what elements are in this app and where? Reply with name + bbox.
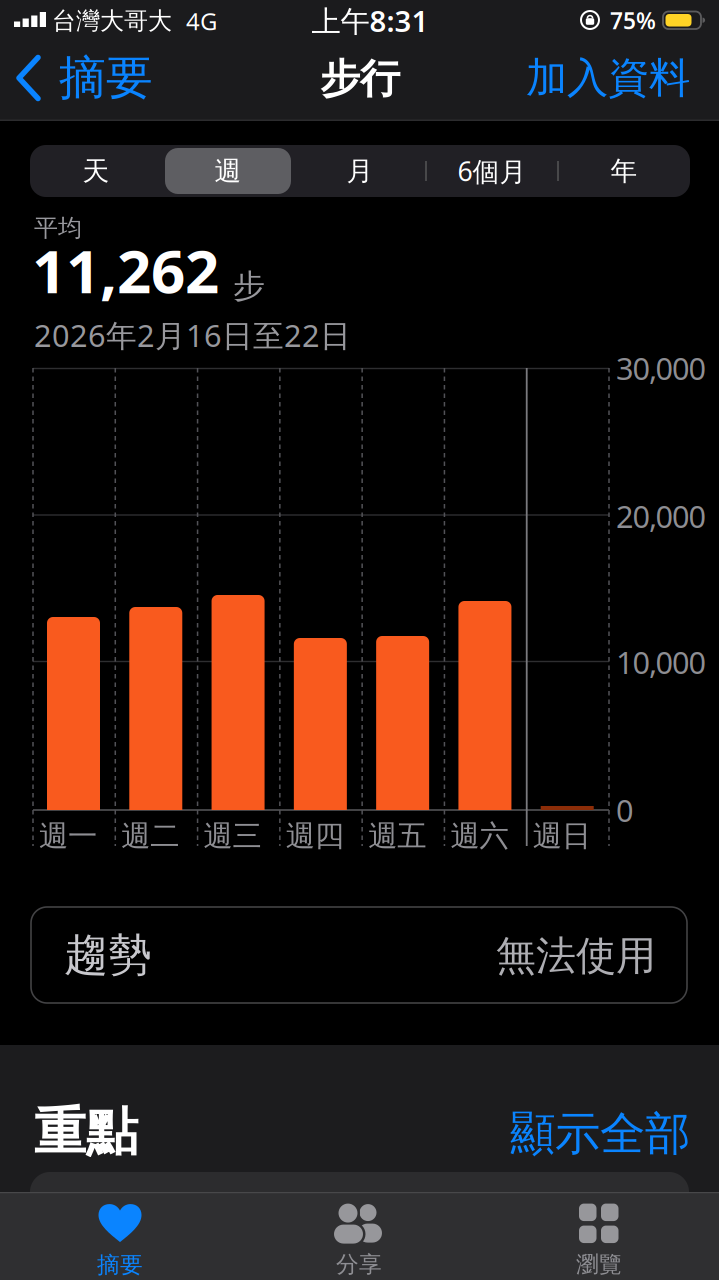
staticText: 月 [346,155,373,187]
staticText: 分享 [336,1251,382,1278]
button[interactable]: 分享 [289,1202,429,1280]
staticText: 年 [610,155,637,187]
button[interactable]: 週 [162,145,294,197]
staticText: 無法使用 [496,931,656,980]
staticText: 平均 [34,213,82,243]
staticText: 週四 [286,818,344,854]
staticText: 週 [214,155,241,187]
staticText: 趨勢 [64,928,152,982]
staticText: 顯示全部 [510,1106,690,1162]
button[interactable]: 顯示全部 [430,1106,690,1162]
staticText: 加入資料 [526,53,690,103]
staticText: 10,000 [616,642,706,682]
button[interactable]: 摘要 [16,50,236,106]
staticText: 20,000 [616,496,706,536]
button[interactable]: 6個月 [426,145,558,197]
staticText: 6個月 [457,153,526,189]
staticText: 步 [233,266,265,306]
staticText: 步行 [320,54,400,103]
staticText: 天 [82,155,109,187]
button[interactable]: 天 [30,145,162,197]
staticText: 台灣大哥大 [52,6,172,36]
staticText: 75% [610,5,656,35]
staticText: 重點 [34,1100,138,1164]
button[interactable]: 月 [294,145,426,197]
button[interactable]: 趨勢 [30,906,688,1004]
button[interactable]: 年 [558,145,690,197]
staticText: 2026年2月16日至22日 [34,315,351,355]
button[interactable]: 摘要 [50,1202,190,1280]
staticText: 週五 [368,818,426,854]
staticText: 週日 [533,818,591,854]
staticText: 週三 [204,818,262,854]
staticText: 上午8:31 [311,1,428,40]
staticText: 摘要 [59,49,153,107]
button[interactable]: 瀏覽 [529,1202,669,1280]
staticText: 摘要 [97,1251,143,1279]
staticText: 0 [616,790,634,830]
staticText: 週一 [39,818,97,854]
staticText: 30,000 [616,348,706,388]
staticText: 週二 [121,818,179,854]
button[interactable]: 加入資料 [460,53,690,103]
staticText: 4G [186,5,217,37]
staticText: 週六 [450,818,508,854]
staticText: 瀏覽 [576,1251,622,1278]
staticText: 11,262 [32,230,219,310]
